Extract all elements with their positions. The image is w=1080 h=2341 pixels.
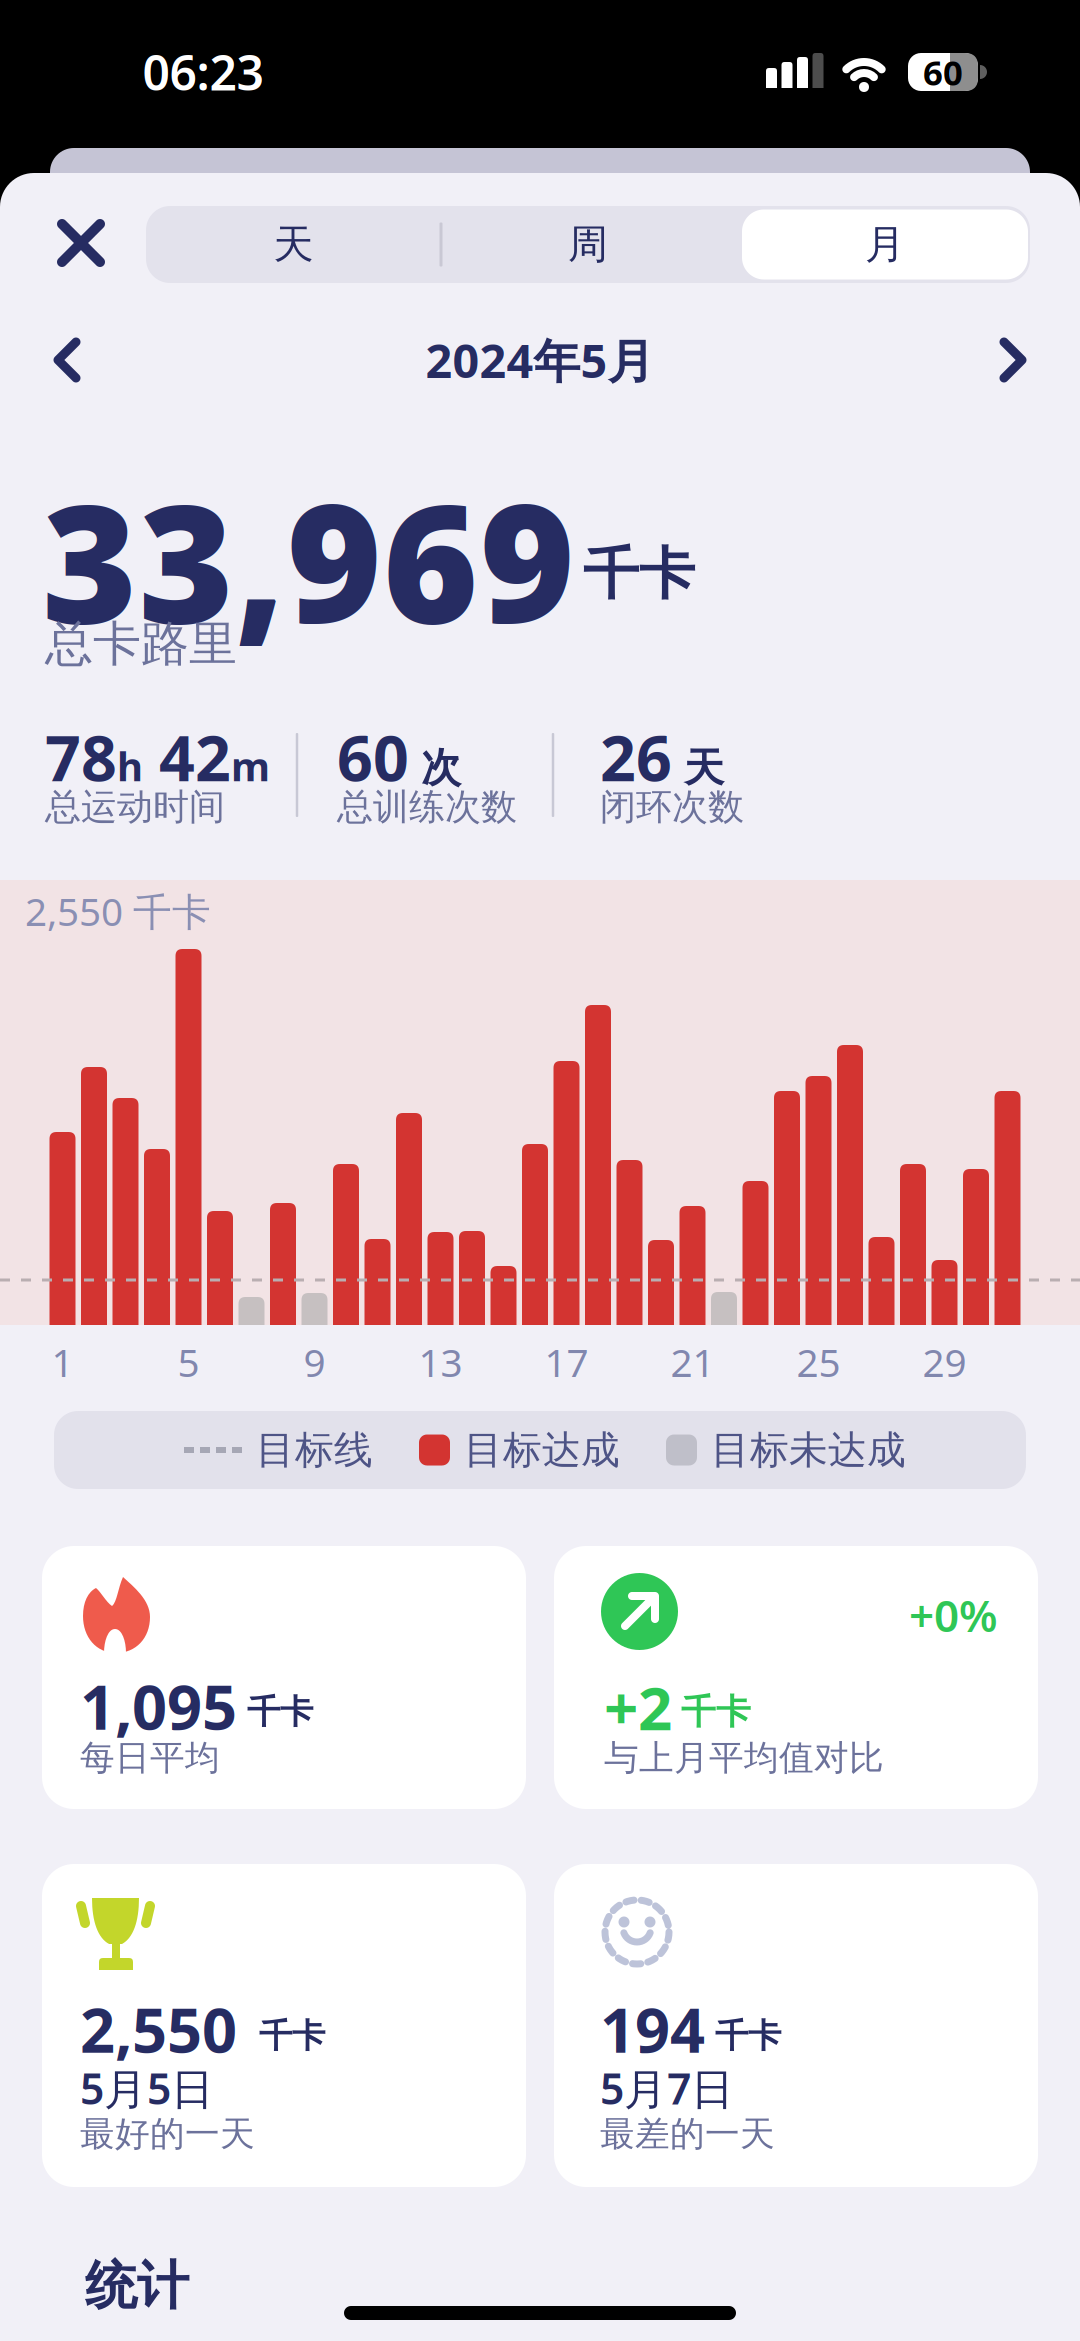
button[interactable]: 天 <box>146 206 440 283</box>
staticText: 17 <box>544 1336 588 1388</box>
staticText: 9 <box>303 1336 325 1388</box>
staticText: 目标达成 <box>464 1426 620 1474</box>
staticText: 最差的一天 <box>600 2113 775 2155</box>
staticText: 06:23 <box>142 40 263 104</box>
staticText: 25 <box>796 1336 840 1388</box>
staticText: 1,095 <box>80 1665 237 1747</box>
staticText: 13 <box>418 1336 462 1388</box>
staticText: +0% <box>909 1586 998 1644</box>
staticText: 5月5日 <box>80 2060 214 2116</box>
staticText: 次 <box>409 743 461 792</box>
staticText: 42 <box>143 715 231 799</box>
staticText: 每日平均 <box>80 1737 220 1779</box>
staticText: 194 <box>600 1988 705 2070</box>
staticText: 21 <box>670 1336 714 1388</box>
staticText: 总卡路里 <box>45 614 237 673</box>
staticText: 78 <box>45 715 117 799</box>
staticText: 统计 <box>85 2254 189 2318</box>
staticText: 千卡 <box>681 1691 751 1733</box>
staticText: 1 <box>51 1336 73 1388</box>
button[interactable]: Previous month <box>44 330 88 390</box>
staticText: 33,969 <box>42 452 574 668</box>
staticText: 5月7日 <box>600 2060 734 2116</box>
button[interactable]: Close <box>41 203 121 283</box>
staticText: 29 <box>922 1336 966 1388</box>
staticText: 天 <box>273 220 313 269</box>
staticText: 目标未达成 <box>711 1426 906 1474</box>
staticText: 最好的一天 <box>80 2113 255 2155</box>
staticText: +2 <box>604 1667 672 1747</box>
button[interactable]: 周 <box>441 206 735 283</box>
staticText: 总运动时间 <box>45 785 225 829</box>
staticText: 总训练次数 <box>337 785 517 829</box>
staticText: m <box>231 739 270 792</box>
button[interactable]: Next month <box>992 330 1036 390</box>
staticText: 5 <box>177 1336 199 1388</box>
staticText: 周 <box>568 220 608 269</box>
staticText: 26 <box>600 715 672 799</box>
staticText: 2,550 千卡 <box>25 885 211 937</box>
staticText: 60 <box>923 49 963 95</box>
staticText: 千卡 <box>247 1691 313 1732</box>
button[interactable]: 月 <box>738 206 1032 283</box>
staticText: 2,550 <box>80 1988 237 2070</box>
staticText: 月 <box>865 220 905 269</box>
staticText: 闭环次数 <box>600 785 744 829</box>
staticText: 目标线 <box>256 1426 373 1474</box>
staticText: 2024年5月 <box>425 329 654 391</box>
staticText: h <box>117 739 143 792</box>
staticText: 千卡 <box>583 540 695 608</box>
staticText: 千卡 <box>715 2015 781 2056</box>
staticText: 60 <box>337 715 409 799</box>
staticText: 与上月平均值对比 <box>604 1737 884 1779</box>
staticText: 千卡 <box>259 2015 325 2056</box>
staticText: 天 <box>672 743 724 792</box>
